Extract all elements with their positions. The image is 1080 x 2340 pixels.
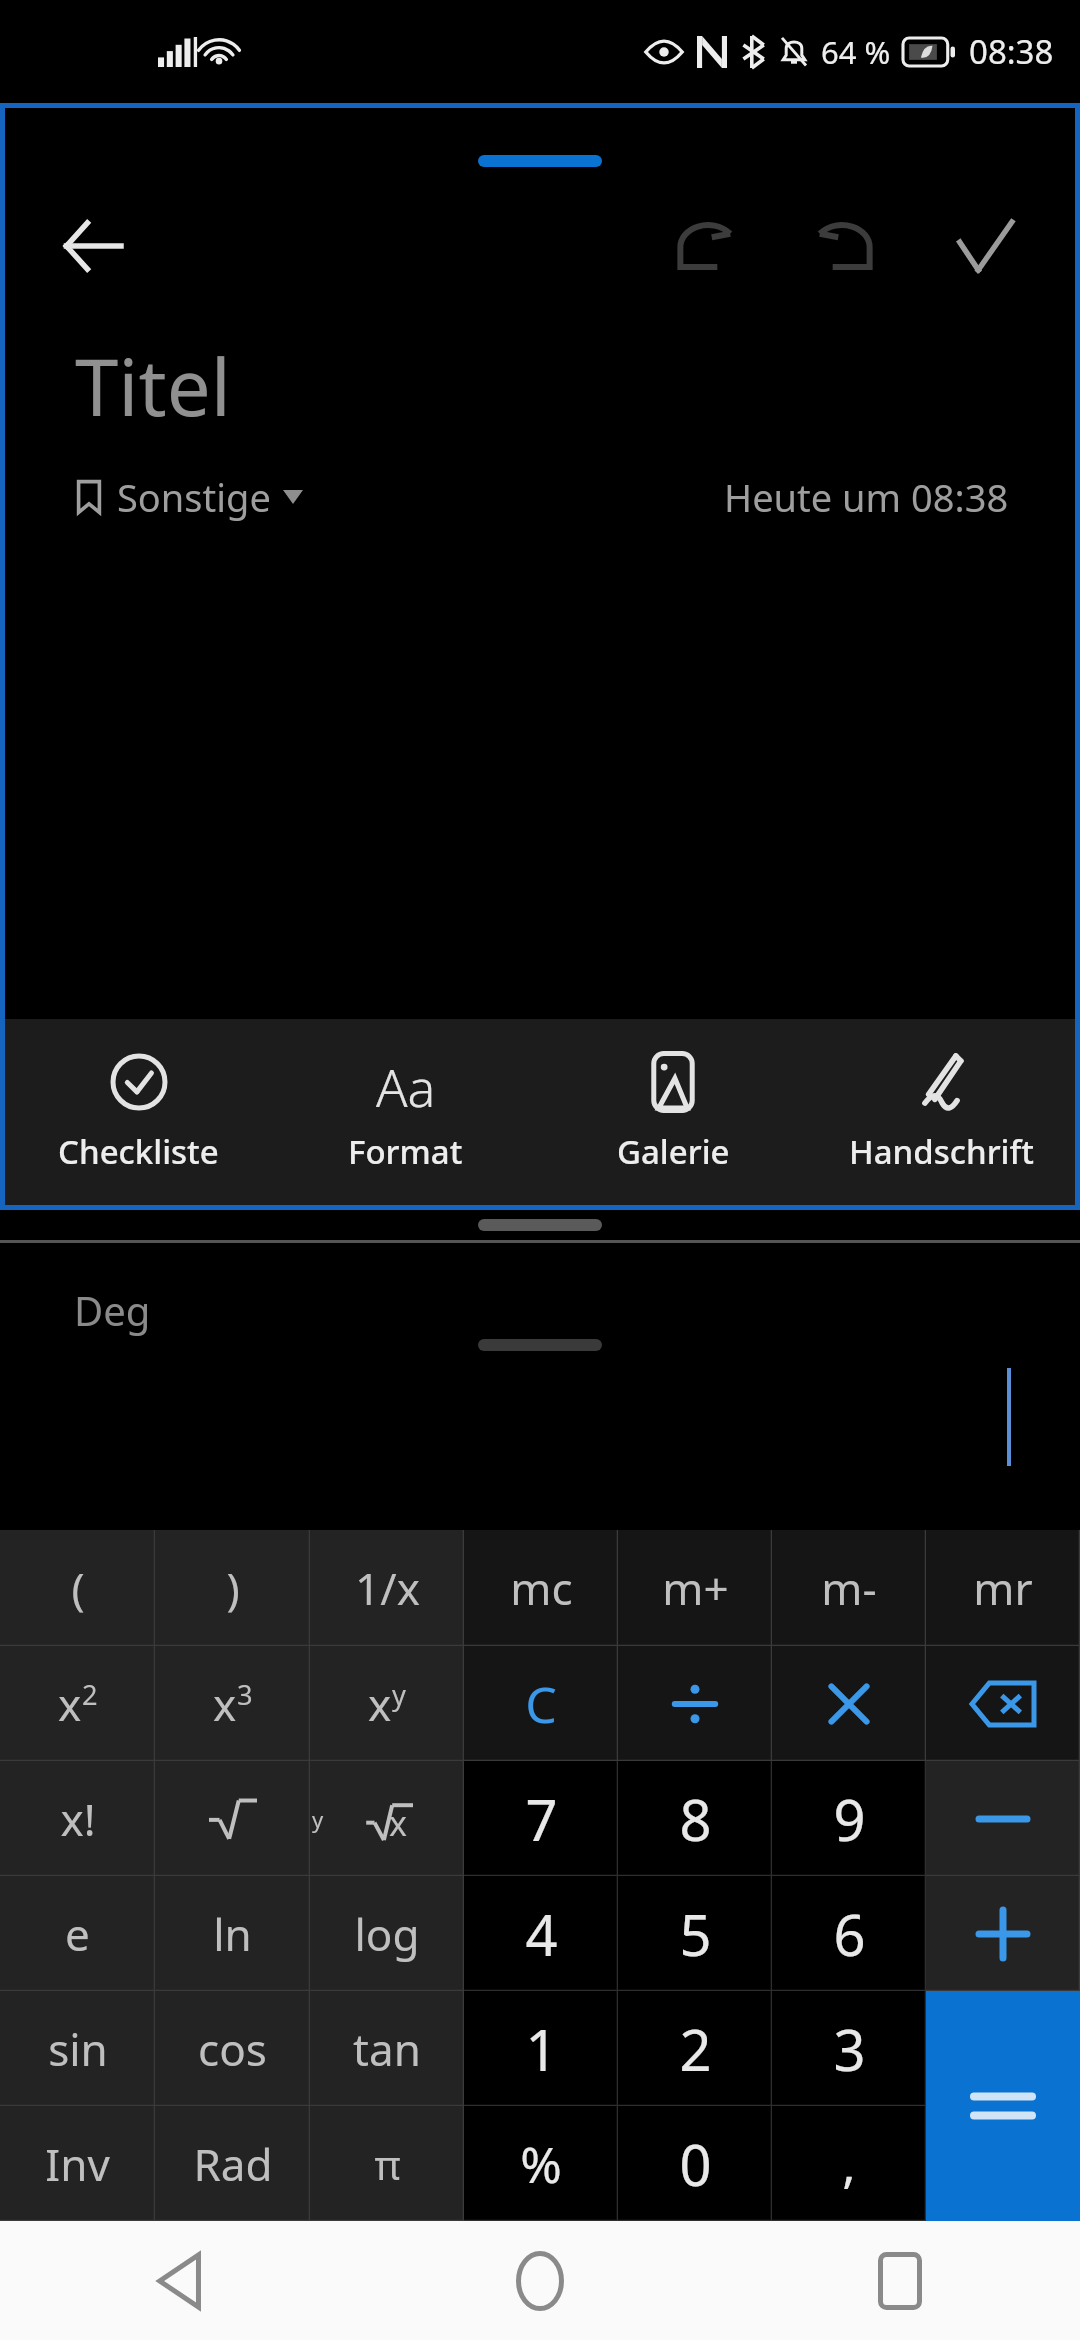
- staticText: 7: [525, 1781, 558, 1857]
- staticText: 8: [679, 1781, 712, 1857]
- button[interactable]: y: [310, 1761, 464, 1876]
- button[interactable]: Letzte Apps: [720, 2221, 1080, 2340]
- button[interactable]: mc: [464, 1530, 618, 1646]
- staticText: Galerie: [617, 1129, 730, 1174]
- staticText: sin: [48, 2019, 108, 2079]
- staticText: m-: [821, 1558, 877, 1618]
- button[interactable]: Zurück: [49, 203, 135, 289]
- button[interactable]: x: [155, 1646, 310, 1761]
- button[interactable]: m+: [618, 1530, 772, 1646]
- staticText: cos: [198, 2019, 267, 2079]
- staticText: 3: [833, 2011, 866, 2087]
- staticText: x: [213, 1674, 237, 1734]
- staticText: Aa: [376, 1051, 436, 1113]
- staticText: y: [392, 1676, 406, 1713]
- button[interactable]: C: [464, 1646, 618, 1761]
- button[interactable]: sin: [0, 1991, 155, 2106]
- staticText: 0: [679, 2126, 712, 2202]
- button[interactable]: %: [464, 2106, 618, 2221]
- staticText: 64 %: [821, 31, 891, 73]
- button[interactable]: 6: [772, 1876, 926, 1991]
- button[interactable]: mr: [926, 1530, 1080, 1646]
- button[interactable]: tan: [310, 1991, 464, 2106]
- staticText: %: [520, 2130, 562, 2198]
- staticText: e: [65, 1904, 90, 1964]
- staticText: x: [389, 1800, 407, 1846]
- button[interactable]: Aa: [272, 1019, 539, 1205]
- button[interactable]: m-: [772, 1530, 926, 1646]
- button[interactable]: Checkliste: [5, 1019, 272, 1205]
- button[interactable]: Inv: [0, 2106, 155, 2221]
- button[interactable]: Rad: [155, 2106, 310, 2221]
- button[interactable]: cos: [155, 1991, 310, 2106]
- button[interactable]: 0: [618, 2106, 772, 2221]
- staticText: 2: [82, 1676, 98, 1713]
- staticText: Handschrift: [849, 1129, 1034, 1174]
- button[interactable]: 8: [618, 1761, 772, 1876]
- staticText: ,: [842, 2130, 856, 2198]
- staticText: Titel: [75, 333, 231, 439]
- button[interactable]: 1: [464, 1991, 618, 2106]
- button[interactable]: Zurück: [0, 2221, 360, 2340]
- staticText: x: [58, 1674, 82, 1734]
- staticText: 1/x: [355, 1558, 420, 1618]
- button[interactable]: 7: [464, 1761, 618, 1876]
- button[interactable]: x: [0, 1646, 155, 1761]
- button[interactable]: x: [310, 1646, 464, 1761]
- button[interactable]: Sonstige: [75, 471, 303, 523]
- staticText: log: [354, 1904, 420, 1964]
- button[interactable]: x!: [0, 1761, 155, 1876]
- staticText: ln: [213, 1904, 252, 1964]
- button[interactable]: 9: [772, 1761, 926, 1876]
- button[interactable]: Startseite: [360, 2221, 720, 2340]
- button[interactable]: ): [155, 1530, 310, 1646]
- staticText: 08:38: [969, 29, 1054, 74]
- button[interactable]: log: [310, 1876, 464, 1991]
- button[interactable]: 4: [464, 1876, 618, 1991]
- button[interactable]: [772, 1646, 926, 1761]
- staticText: (: [71, 1558, 85, 1618]
- staticText: Inv: [45, 2134, 110, 2194]
- button[interactable]: [618, 1646, 772, 1761]
- button[interactable]: 3: [772, 1991, 926, 2106]
- staticText: x: [368, 1674, 392, 1734]
- button[interactable]: 5: [618, 1876, 772, 1991]
- button[interactable]: ,: [772, 2106, 926, 2221]
- button[interactable]: Gleich: [926, 1991, 1080, 2221]
- button[interactable]: Handschrift: [807, 1019, 1075, 1205]
- staticText: m+: [662, 1558, 729, 1618]
- button[interactable]: [926, 1876, 1080, 1991]
- staticText: 5: [679, 1896, 712, 1972]
- staticText: Sonstige: [117, 471, 271, 523]
- staticText: 4: [525, 1896, 558, 1972]
- button[interactable]: π: [310, 2106, 464, 2221]
- staticText: 1: [525, 2011, 558, 2087]
- staticText: 3: [237, 1676, 253, 1713]
- button[interactable]: [926, 1761, 1080, 1876]
- button[interactable]: [926, 1991, 1080, 2106]
- staticText: y: [312, 1804, 324, 1834]
- button[interactable]: Galerie: [539, 1019, 807, 1205]
- staticText: Checkliste: [58, 1129, 219, 1174]
- button[interactable]: 2: [618, 1991, 772, 2106]
- button[interactable]: Rückgängig: [659, 200, 751, 292]
- button[interactable]: 1/x: [310, 1530, 464, 1646]
- button[interactable]: (: [0, 1530, 155, 1646]
- button[interactable]: ln: [155, 1876, 310, 1991]
- button[interactable]: e: [0, 1876, 155, 1991]
- staticText: 6: [833, 1896, 866, 1972]
- staticText: 2: [679, 2011, 712, 2087]
- staticText: C: [525, 1670, 557, 1738]
- button[interactable]: [155, 1761, 310, 1876]
- staticText: π: [374, 2137, 401, 2191]
- staticText: Rad: [193, 2134, 273, 2194]
- staticText: Format: [348, 1129, 463, 1174]
- staticText: Heute um 08:38: [724, 471, 1009, 523]
- button[interactable]: Wiederholen: [799, 200, 891, 292]
- staticText: x!: [60, 1789, 96, 1849]
- staticText: ): [226, 1558, 240, 1618]
- button[interactable]: [926, 1646, 1080, 1761]
- staticText: tan: [353, 2019, 421, 2079]
- staticText: mr: [973, 1558, 1033, 1618]
- button[interactable]: Speichern: [939, 200, 1031, 292]
